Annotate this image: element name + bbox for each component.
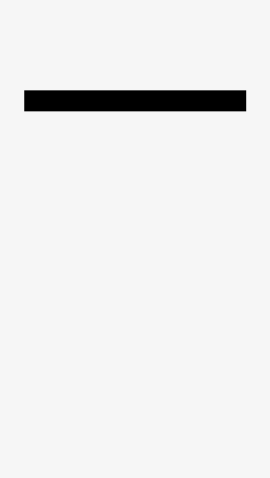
- button[interactable]: Banner: [24, 90, 246, 112]
